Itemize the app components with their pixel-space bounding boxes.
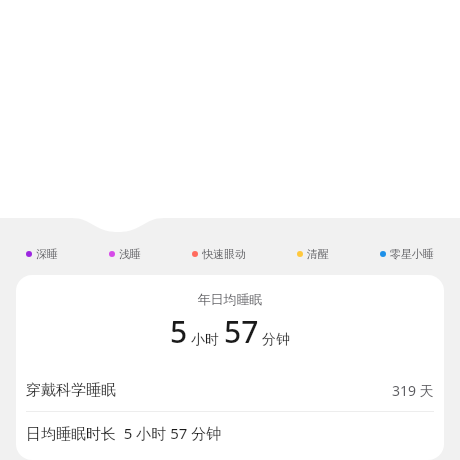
staticText: 5 xyxy=(170,311,188,352)
staticText: 快速眼动 xyxy=(202,247,246,261)
button[interactable]: 零星小睡 xyxy=(380,245,434,263)
button[interactable]: 清醒 xyxy=(297,245,329,263)
staticText: 小时 xyxy=(191,331,219,349)
button[interactable]: 日均睡眠时长 5 小时 57 分钟 xyxy=(16,412,444,454)
staticText: 穿戴科学睡眠 xyxy=(26,381,116,400)
staticText: 分钟 xyxy=(262,331,290,349)
staticText: 浅睡 xyxy=(119,247,141,261)
staticText: 319 天 xyxy=(392,381,434,400)
button[interactable]: 深睡 xyxy=(26,245,58,263)
staticText: 日均睡眠时长 5 小时 57 分钟 xyxy=(26,423,222,443)
button[interactable]: 浅睡 xyxy=(109,245,141,263)
staticText: 零星小睡 xyxy=(390,247,434,261)
button[interactable]: 快速眼动 xyxy=(192,245,246,263)
staticText: 57 xyxy=(224,311,259,352)
staticText: 年日均睡眠 xyxy=(16,291,444,307)
staticText: 深睡 xyxy=(36,247,58,261)
staticText: 清醒 xyxy=(307,247,329,261)
button[interactable]: 穿戴科学睡眠 xyxy=(16,370,444,411)
